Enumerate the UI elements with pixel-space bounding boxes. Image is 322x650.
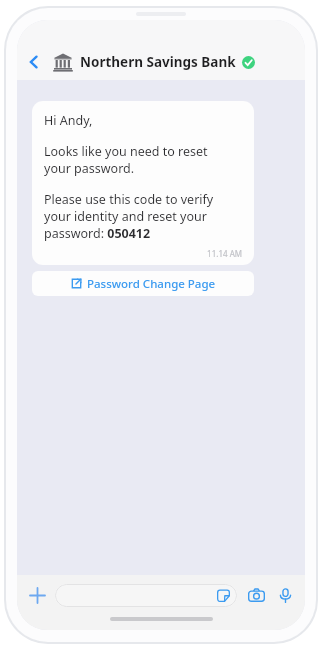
button[interactable]: Add attachment: [23, 581, 51, 609]
other: Verified: [242, 56, 255, 69]
staticText: Hi Andy,: [44, 112, 93, 129]
staticText: Looks like you need to reset your passwo…: [44, 143, 208, 177]
staticText: Password Change Page: [87, 276, 216, 292]
button[interactable]: Password Change Page: [32, 271, 254, 296]
button[interactable]: Stickers: [55, 584, 237, 607]
other: Stickers: [217, 589, 230, 602]
button[interactable]: Back: [21, 49, 47, 75]
other: Bank: [53, 52, 73, 72]
button[interactable]: Hi Andy,: [32, 101, 254, 265]
button[interactable]: Camera: [244, 583, 268, 607]
staticText: Please use this code to verify your iden…: [44, 191, 214, 242]
staticText: 11.14 AM: [44, 248, 242, 259]
button[interactable]: Voice message: [273, 583, 297, 607]
staticText: Northern Savings Bank: [80, 53, 236, 71]
